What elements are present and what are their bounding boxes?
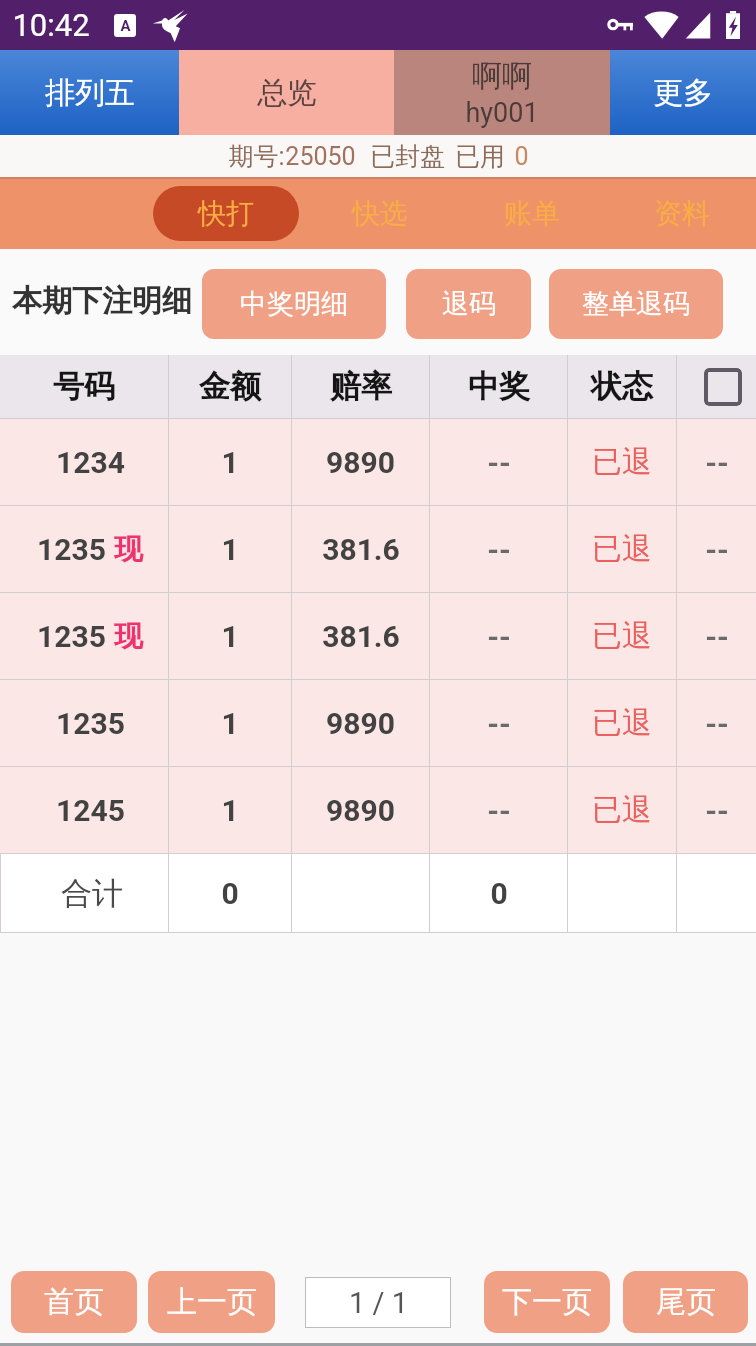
- staticText: --: [705, 619, 729, 654]
- staticText: --: [487, 532, 511, 567]
- staticText: --: [487, 706, 511, 741]
- staticText: 上一页: [167, 1283, 257, 1321]
- button[interactable]: 1245: [0, 767, 756, 853]
- staticText: --: [487, 793, 511, 828]
- staticText: 啊啊: [472, 57, 532, 95]
- button[interactable]: 整单退码: [549, 269, 723, 339]
- staticText: 381.6: [322, 532, 400, 567]
- button[interactable]: 1234: [0, 419, 756, 505]
- staticText: 1235: [37, 532, 106, 567]
- staticText: 排列五: [45, 74, 135, 112]
- staticText: 1: [221, 445, 239, 480]
- staticText: --: [705, 532, 729, 567]
- button[interactable]: 啊啊: [394, 50, 610, 135]
- staticText: 25050: [285, 142, 356, 171]
- staticText: A: [120, 17, 131, 35]
- staticText: --: [705, 445, 729, 480]
- staticText: 1234: [56, 445, 125, 480]
- staticText: 已退: [592, 617, 652, 655]
- staticText: 1: [221, 793, 239, 828]
- staticText: 0: [514, 142, 529, 171]
- staticText: 已退: [592, 443, 652, 481]
- staticText: 0: [490, 876, 508, 911]
- button[interactable]: 账单: [456, 177, 607, 249]
- staticText: hy001: [465, 97, 539, 129]
- staticText: 退码: [442, 287, 496, 321]
- staticText: 1235: [37, 619, 106, 654]
- staticText: 更多: [653, 74, 713, 112]
- staticText: 合计: [61, 874, 123, 913]
- staticText: 9890: [326, 445, 395, 480]
- staticText: 10:42: [12, 7, 90, 43]
- staticText: 尾页: [656, 1283, 716, 1321]
- staticText: 已退: [592, 530, 652, 568]
- button[interactable]: 快打: [153, 186, 299, 241]
- staticText: --: [487, 619, 511, 654]
- staticText: 9890: [326, 793, 395, 828]
- staticText: 1235: [56, 706, 125, 741]
- staticText: 账单: [504, 196, 560, 231]
- button[interactable]: 1235: [0, 593, 756, 679]
- staticText: 1: [221, 619, 239, 654]
- staticText: 1: [221, 532, 239, 567]
- button[interactable]: 总览: [179, 50, 394, 135]
- button[interactable]: 1235: [0, 506, 756, 592]
- button[interactable]: 上一页: [148, 1271, 275, 1333]
- staticText: 赔率: [330, 367, 392, 406]
- staticText: 整单退码: [582, 287, 690, 321]
- staticText: 金额: [199, 367, 261, 406]
- button[interactable]: 退码: [406, 269, 531, 339]
- staticText: 1: [221, 706, 239, 741]
- staticText: 总览: [257, 74, 317, 112]
- staticText: 已退: [592, 791, 652, 829]
- button[interactable]: 中奖明细: [202, 269, 386, 339]
- staticText: 已退: [592, 704, 652, 742]
- staticText: 1 / 1: [349, 1286, 408, 1320]
- staticText: 状态: [591, 367, 653, 406]
- staticText: 已用: [455, 141, 505, 172]
- button[interactable]: 尾页: [623, 1271, 748, 1333]
- staticText: 下一页: [502, 1283, 592, 1321]
- staticText: 期号:: [228, 141, 285, 172]
- staticText: 首页: [44, 1283, 104, 1321]
- button[interactable]: 资料: [607, 177, 756, 249]
- staticText: 0: [221, 876, 239, 911]
- staticText: 快选: [352, 196, 408, 231]
- staticText: 现: [114, 531, 143, 568]
- staticText: 381.6: [322, 619, 400, 654]
- staticText: 资料: [654, 196, 710, 231]
- staticText: --: [487, 445, 511, 480]
- staticText: 中奖: [468, 367, 530, 406]
- button[interactable]: 1235: [0, 680, 756, 766]
- staticText: 已封盘: [370, 141, 445, 172]
- staticText: 号码: [53, 367, 115, 406]
- staticText: --: [705, 793, 729, 828]
- staticText: 快打: [198, 196, 254, 231]
- button[interactable]: Select all rows: [704, 368, 742, 406]
- button[interactable]: 更多: [610, 50, 756, 135]
- staticText: 现: [114, 618, 143, 655]
- button[interactable]: 下一页: [484, 1271, 610, 1333]
- staticText: 1245: [56, 793, 125, 828]
- button[interactable]: 首页: [11, 1271, 137, 1333]
- staticText: 中奖明细: [240, 287, 348, 321]
- staticText: 本期下注明细: [12, 282, 192, 320]
- staticText: 9890: [326, 706, 395, 741]
- button[interactable]: 排列五: [0, 50, 179, 135]
- staticText: --: [705, 706, 729, 741]
- button[interactable]: 快选: [303, 177, 456, 249]
